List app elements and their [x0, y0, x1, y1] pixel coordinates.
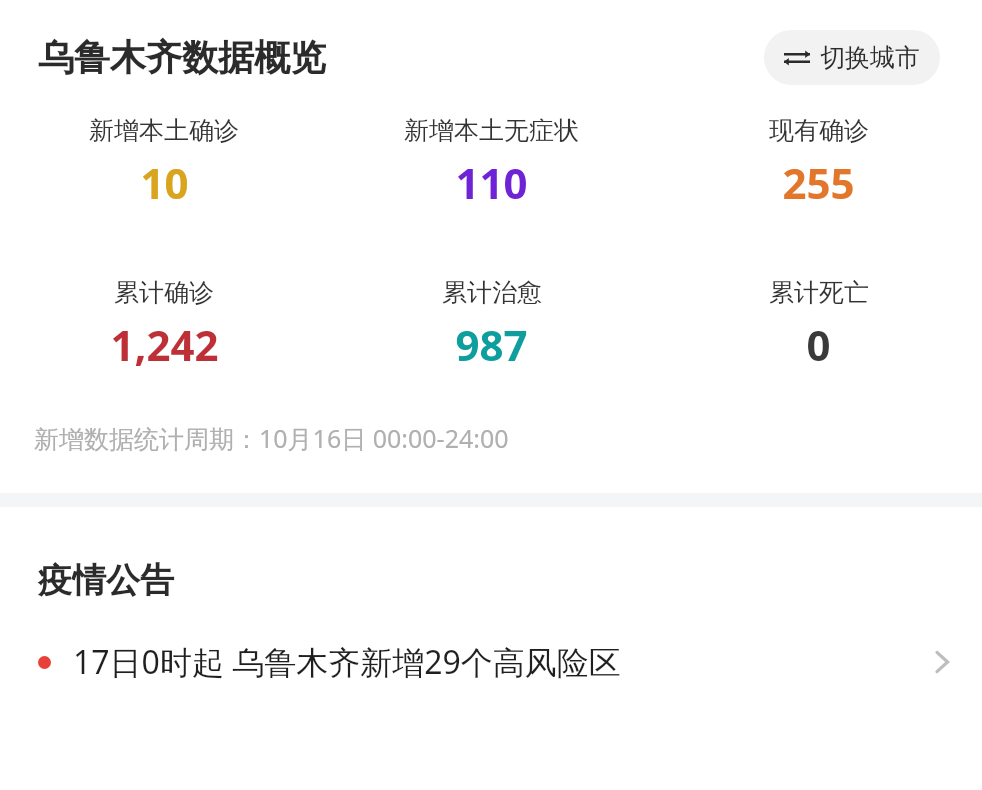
button[interactable]: 新增本土无症状 [328, 115, 655, 211]
staticText: 累计确诊 [114, 277, 214, 308]
button[interactable]: 17日0时起 乌鲁木齐新增29个高风险区 [0, 640, 982, 684]
staticText: 110 [455, 154, 528, 211]
staticText: 新增本土确诊 [89, 115, 239, 146]
staticText: 255 [782, 154, 855, 211]
staticText: 1,242 [110, 316, 219, 373]
staticText: 现有确诊 [769, 115, 869, 146]
staticText: 累计死亡 [769, 277, 869, 308]
staticText: 切换城市 [820, 42, 920, 73]
staticText: 累计治愈 [442, 277, 542, 308]
staticText: 17日0时起 乌鲁木齐新增29个高风险区 [73, 640, 920, 684]
staticText: 新增数据统计周期：10月16日 00:00-24:00 [34, 421, 509, 455]
button[interactable]: 累计治愈 [328, 277, 655, 373]
button[interactable]: 切换城市 [764, 30, 940, 85]
other: 查看详情 [932, 647, 952, 677]
staticText: 疫情公告 [38, 559, 174, 602]
button[interactable]: 现有确诊 [655, 115, 982, 211]
button[interactable]: 累计死亡 [655, 277, 982, 373]
staticText: 10 [140, 154, 189, 211]
staticText: 乌鲁木齐数据概览 [38, 35, 326, 80]
staticText: 987 [455, 316, 528, 373]
button[interactable]: 累计确诊 [0, 277, 328, 373]
button[interactable]: 新增本土确诊 [0, 115, 328, 211]
staticText: 0 [806, 316, 831, 373]
staticText: 新增本土无症状 [404, 115, 579, 146]
